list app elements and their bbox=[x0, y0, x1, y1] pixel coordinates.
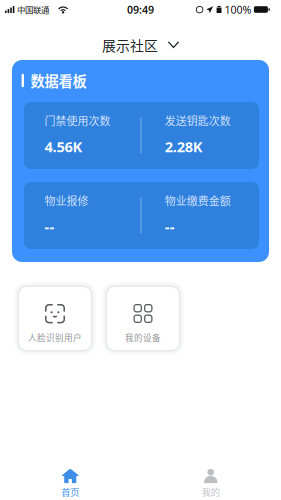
staticText: 我的设备 bbox=[125, 331, 161, 344]
button[interactable]: 展示社区 bbox=[94, 32, 187, 58]
staticText: -- bbox=[165, 217, 175, 236]
staticText: 09:49 bbox=[127, 2, 154, 17]
staticText: 人脸识别用户 bbox=[28, 331, 82, 344]
button[interactable]: 我的设备 bbox=[107, 287, 179, 350]
staticText: 2.28K bbox=[165, 137, 203, 156]
button[interactable]: 首页 bbox=[0, 467, 140, 498]
staticText: 100% bbox=[224, 2, 251, 17]
staticText: 首页 bbox=[61, 485, 79, 498]
staticText: 物业缴费金额 bbox=[165, 193, 231, 208]
button[interactable]: 我的 bbox=[140, 467, 281, 498]
staticText: 门禁使用次数 bbox=[45, 113, 111, 128]
staticText: 我的 bbox=[202, 485, 220, 498]
staticText: 发送钥匙次数 bbox=[165, 113, 231, 128]
staticText: -- bbox=[45, 217, 55, 236]
staticText: 中国联通 bbox=[17, 3, 49, 16]
staticText: 物业报修 bbox=[45, 193, 89, 208]
staticText: 4.56K bbox=[45, 137, 83, 156]
staticText: 数据看板 bbox=[31, 70, 87, 91]
button[interactable]: 人脸识别用户 bbox=[19, 287, 91, 350]
staticText: 展示社区 bbox=[102, 35, 158, 55]
